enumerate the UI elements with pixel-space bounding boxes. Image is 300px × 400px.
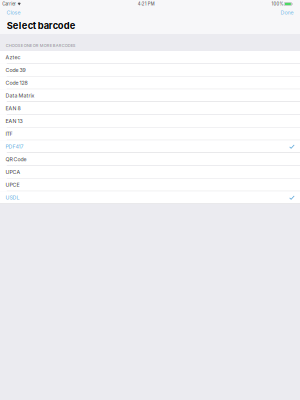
button[interactable]: Done [276, 8, 300, 17]
button[interactable]: Aztec [0, 51, 300, 64]
staticText: Aztec [5, 54, 20, 61]
button[interactable]: Code 39 [0, 64, 300, 77]
staticText: CHOOSE ONE OR MORE BARCODES [6, 43, 76, 48]
staticText: Select barcode [7, 20, 76, 31]
staticText: EAN 13 [5, 118, 22, 124]
staticText: Carrier [2, 1, 16, 7]
staticText: Done [281, 9, 294, 16]
button[interactable]: Data Matrix [0, 89, 300, 102]
button[interactable]: UPCE [0, 178, 300, 191]
button[interactable]: USDL [0, 191, 300, 204]
button[interactable]: Close [0, 8, 25, 17]
button[interactable]: QR Code [0, 153, 300, 166]
staticText: PDF417 [5, 143, 23, 150]
staticText: EAN 8 [5, 105, 20, 112]
button[interactable]: UPCA [0, 166, 300, 179]
staticText: USDL [5, 194, 19, 201]
staticText: 4:21 PM [138, 1, 155, 7]
staticText: Code 128 [5, 80, 27, 86]
staticText: QR Code [5, 156, 26, 163]
staticText: ITF [5, 131, 12, 137]
button[interactable]: EAN 13 [0, 115, 300, 128]
button[interactable]: ITF [0, 127, 300, 140]
staticText: Data Matrix [5, 92, 34, 99]
staticText: 100% [271, 1, 283, 7]
button[interactable]: PDF417 [0, 140, 300, 153]
staticText: Close [6, 9, 20, 16]
staticText: UPCE [5, 182, 19, 188]
staticText: Code 39 [5, 67, 25, 73]
button[interactable]: EAN 8 [0, 102, 300, 115]
button[interactable]: Code 128 [0, 76, 300, 89]
staticText: UPCA [5, 169, 20, 175]
